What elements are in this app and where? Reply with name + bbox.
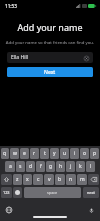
button[interactable]: o xyxy=(80,148,89,159)
button[interactable]: k xyxy=(76,161,85,172)
button[interactable]: Ella Hill xyxy=(7,52,93,63)
button[interactable]: i xyxy=(70,148,79,159)
staticText: Next xyxy=(44,69,56,76)
button[interactable]: h xyxy=(56,161,65,172)
staticText: 11:53 xyxy=(5,3,17,9)
staticText: u xyxy=(63,150,67,157)
button[interactable]: b xyxy=(55,174,65,185)
staticText: x xyxy=(26,176,29,183)
button[interactable]: Change language xyxy=(5,206,13,214)
button[interactable]: Shift xyxy=(1,174,12,185)
button[interactable]: f xyxy=(36,161,45,172)
button[interactable]: q xyxy=(1,148,9,159)
button[interactable]: j xyxy=(66,161,75,172)
staticText: d xyxy=(29,163,33,170)
staticText: f xyxy=(40,163,42,170)
staticText: 123 xyxy=(3,190,10,195)
staticText: h xyxy=(59,163,63,170)
button[interactable]: g xyxy=(46,161,55,172)
button[interactable]: s xyxy=(16,161,25,172)
button[interactable]: d xyxy=(26,161,35,172)
staticText: m xyxy=(80,176,85,183)
button[interactable]: m xyxy=(77,174,87,185)
staticText: w xyxy=(13,150,17,157)
staticText: p xyxy=(93,150,97,157)
button[interactable]: x xyxy=(23,174,32,185)
staticText: a xyxy=(9,163,12,170)
button[interactable]: a xyxy=(5,161,15,172)
staticText: space xyxy=(47,190,58,195)
staticText: q xyxy=(3,150,7,157)
staticText: Ella Hill xyxy=(11,54,83,61)
staticText: n xyxy=(69,176,73,183)
button[interactable]: y xyxy=(50,148,59,159)
staticText: z xyxy=(16,176,19,183)
button[interactable]: 123 xyxy=(1,187,12,198)
staticText: i xyxy=(74,150,76,157)
staticText: s xyxy=(19,163,22,170)
button[interactable]: v xyxy=(44,174,54,185)
button[interactable]: Voice input xyxy=(87,206,95,214)
staticText: y xyxy=(53,150,56,157)
staticText: t xyxy=(44,150,46,157)
button[interactable]: e xyxy=(20,148,29,159)
staticText: Add your name xyxy=(0,21,100,33)
button[interactable]: space xyxy=(24,187,81,198)
button[interactable]: w xyxy=(10,148,19,159)
button[interactable]: t xyxy=(40,148,49,159)
button[interactable]: next xyxy=(83,187,99,198)
button[interactable]: u xyxy=(60,148,69,159)
staticText: c xyxy=(37,176,40,183)
button[interactable]: Clear text xyxy=(83,55,89,61)
staticText: e xyxy=(23,150,26,157)
button[interactable]: Next xyxy=(7,67,93,77)
staticText: o xyxy=(83,150,87,157)
button[interactable]: z xyxy=(13,174,22,185)
staticText: k xyxy=(79,163,82,170)
staticText: j xyxy=(70,163,72,170)
button[interactable]: c xyxy=(33,174,43,185)
button[interactable]: Emoji xyxy=(13,187,22,198)
staticText: v xyxy=(48,176,51,183)
button[interactable]: n xyxy=(66,174,76,185)
staticText: next xyxy=(87,190,95,195)
staticText: r xyxy=(33,150,36,157)
button[interactable]: Backspace xyxy=(88,174,99,185)
staticText: g xyxy=(49,163,53,170)
button[interactable]: p xyxy=(90,148,99,159)
button[interactable]: l xyxy=(86,161,95,172)
staticText: l xyxy=(90,163,92,170)
staticText: b xyxy=(58,176,62,183)
staticText: Add your name so that friends can find y… xyxy=(5,39,95,45)
button[interactable]: r xyxy=(30,148,39,159)
